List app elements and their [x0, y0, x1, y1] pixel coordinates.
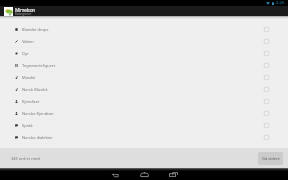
button[interactable]: Musikk	[0, 72, 288, 83]
staticText: 2:26	[276, 0, 285, 6]
button[interactable]: Kjendiser	[0, 96, 288, 107]
button[interactable]: Norske Kjendiser	[0, 108, 288, 119]
staticText: Norske Kjendiser	[22, 111, 55, 116]
staticText: Norske dialekter	[22, 135, 53, 140]
staticText: Tegneseriefigurer	[22, 63, 56, 68]
staticText: Kategorier	[15, 11, 32, 15]
button[interactable]: Språk	[0, 120, 288, 131]
staticText: Språk	[22, 123, 33, 128]
staticText: Mimelson	[15, 7, 35, 14]
button[interactable]: Back	[109, 168, 121, 180]
staticText: Kjendiser	[22, 99, 40, 104]
staticText: Dyr	[22, 51, 29, 56]
button[interactable]: Home	[138, 168, 150, 180]
staticText: Blandet drops	[22, 27, 49, 32]
staticText: Norsk Musikk	[22, 87, 48, 92]
staticText: Våben	[22, 39, 34, 44]
button[interactable]: Blandet drops	[0, 24, 288, 35]
staticText: Musikk	[22, 75, 36, 80]
button[interactable]: Dyr	[0, 48, 288, 59]
staticText: Gå videre	[262, 156, 280, 161]
button[interactable]: Tegneseriefigurer	[0, 60, 288, 71]
button[interactable]: Recent apps	[167, 168, 179, 180]
button[interactable]: Gå videre	[258, 152, 283, 165]
staticText: 345 ord er med	[11, 156, 40, 161]
button[interactable]: Norske dialekter	[0, 132, 288, 143]
button[interactable]: Norsk Musikk	[0, 84, 288, 95]
button[interactable]: Våben	[0, 36, 288, 47]
